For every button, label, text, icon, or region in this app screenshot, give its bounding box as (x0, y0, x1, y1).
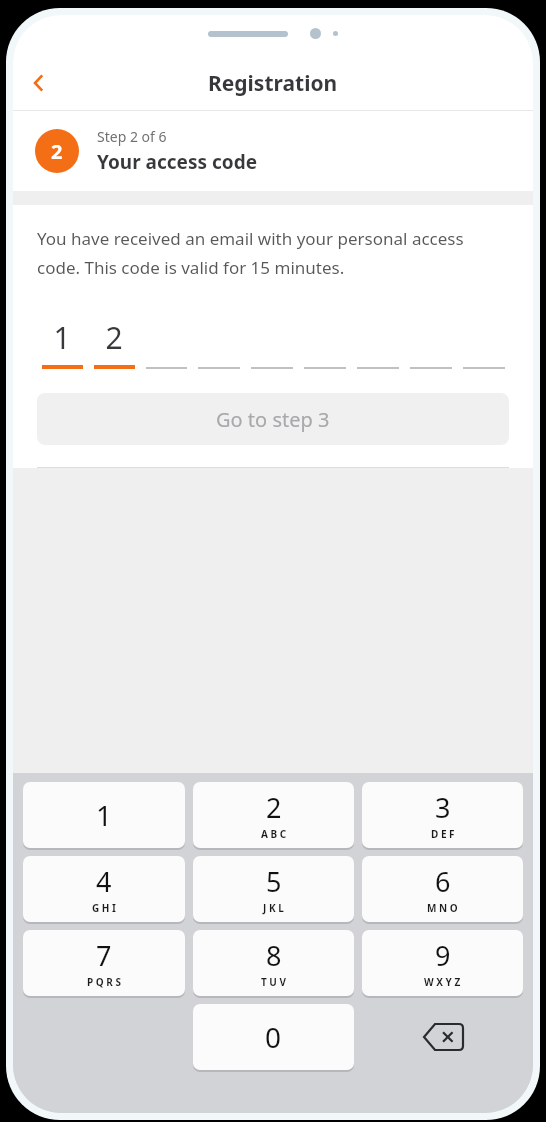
button[interactable]: Back (13, 57, 65, 109)
staticText: Registration (208, 69, 338, 98)
button[interactable]: Go to step 3 (37, 393, 509, 445)
staticText: Your access code (97, 149, 257, 175)
staticText: P Q R S (87, 975, 121, 989)
button[interactable]: 2 (193, 782, 354, 848)
staticText: 9 (435, 937, 451, 974)
button[interactable]: 9 (362, 930, 523, 996)
button[interactable]: 1 (23, 782, 185, 848)
button[interactable]: 0 (193, 1004, 354, 1070)
staticText: Step 2 of 6 (97, 127, 167, 146)
staticText: 0 (265, 1018, 282, 1056)
button[interactable]: 4 (23, 856, 185, 922)
staticText: 8 (266, 937, 282, 974)
staticText: 2 (105, 317, 123, 358)
staticText: D E F (431, 827, 455, 841)
staticText: T U V (261, 975, 287, 989)
staticText: 1 (53, 317, 71, 358)
button[interactable]: 6 (362, 856, 523, 922)
staticText: A B C (261, 827, 287, 841)
button[interactable]: 8 (193, 930, 354, 996)
staticText: 2 (51, 138, 63, 165)
staticText: You have received an email with your per… (37, 227, 509, 279)
staticText: 2 (266, 789, 282, 826)
staticText: W X Y Z (424, 975, 461, 989)
staticText: 4 (96, 863, 112, 900)
button[interactable]: 7 (23, 930, 185, 996)
staticText: J K L (263, 901, 284, 915)
staticText: 6 (435, 863, 451, 900)
button[interactable]: 5 (193, 856, 354, 922)
button[interactable]: Backspace (362, 1004, 523, 1070)
staticText: M N O (427, 901, 458, 915)
staticText: 1 (96, 796, 113, 834)
staticText: 7 (96, 937, 112, 974)
staticText: Go to step 3 (216, 406, 330, 433)
staticText: 3 (435, 789, 451, 826)
staticText: 5 (266, 863, 282, 900)
button[interactable]: 3 (362, 782, 523, 848)
staticText: G H I (92, 901, 116, 915)
